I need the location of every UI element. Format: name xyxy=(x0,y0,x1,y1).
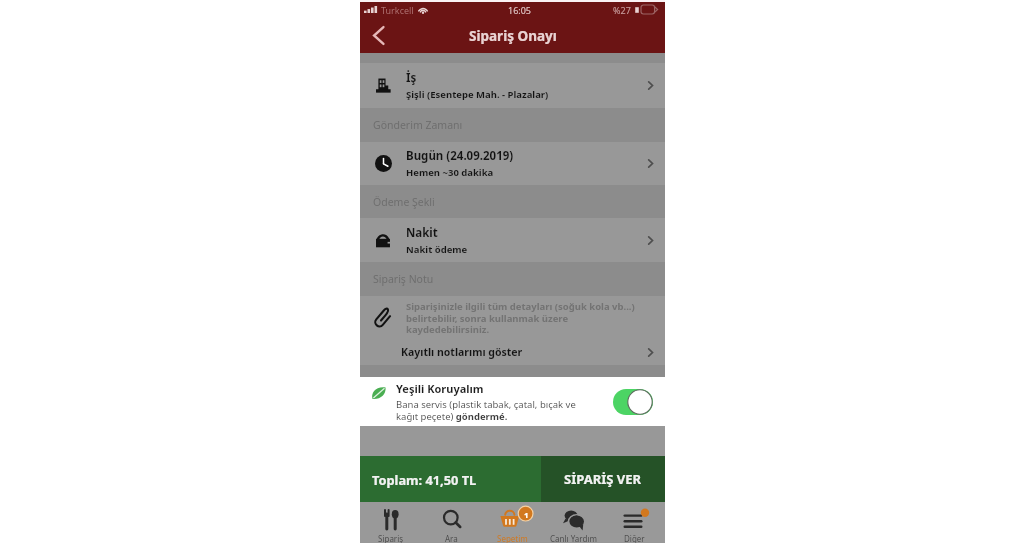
button[interactable]: Siparişinizle ilgili tüm detayları (soğu… xyxy=(360,296,665,339)
staticText: Hemen ~30 dakika xyxy=(406,166,494,179)
button[interactable]: Bugün (24.09.2019) xyxy=(360,142,665,185)
staticText: Nakit xyxy=(406,225,438,241)
staticText: Sepetim xyxy=(497,533,528,543)
staticText: Diğer xyxy=(624,533,645,543)
button[interactable]: 1 xyxy=(482,502,543,543)
staticText: Nakit ödeme xyxy=(406,243,468,256)
staticText: Canlı Yardım xyxy=(550,533,597,543)
staticText: Turkcell xyxy=(381,4,414,16)
staticText: Bugün (24.09.2019) xyxy=(406,148,514,164)
staticText: Sipariş xyxy=(378,533,404,543)
staticText: SİPARİŞ VER xyxy=(564,470,642,488)
staticText: İş xyxy=(406,70,417,86)
button[interactable]: Kayıtlı notlarımı göster xyxy=(360,339,665,365)
button[interactable]: Yeşili Koruyalım xyxy=(360,377,665,426)
button[interactable]: Toplam: 41,50 TL xyxy=(360,456,541,502)
staticText: Ara xyxy=(445,533,458,543)
button[interactable]: Yeşili Koruyalım toggle xyxy=(613,389,653,415)
staticText: %27 xyxy=(613,4,631,16)
button[interactable]: Canlı Yardım xyxy=(543,502,604,543)
staticText: Sipariş Onayı xyxy=(469,27,557,45)
button[interactable]: Diğer xyxy=(604,502,665,543)
staticText: 16:05 xyxy=(508,4,532,16)
staticText: 1 xyxy=(524,510,529,518)
button[interactable]: İş xyxy=(360,63,665,108)
staticText: Toplam: 41,50 TL xyxy=(372,471,477,488)
staticText: Gönderim Zamanı xyxy=(373,118,463,132)
button[interactable]: Sipariş xyxy=(360,502,421,543)
button[interactable]: SİPARİŞ VER xyxy=(541,456,665,502)
staticText: Şişli (Esentepe Mah. - Plazalar) xyxy=(406,88,549,101)
button[interactable]: Ara xyxy=(421,502,482,543)
staticText: Sipariş Notu xyxy=(373,272,434,286)
staticText: Bana servis (plastik tabak, çatal, bıçak… xyxy=(396,398,593,423)
staticText: Yeşili Koruyalım xyxy=(396,381,484,396)
button[interactable]: Nakit xyxy=(360,218,665,262)
staticText: Kayıtlı notlarımı göster xyxy=(401,345,523,359)
staticText: Ödeme Şekli xyxy=(373,195,435,209)
staticText: Siparişinizle ilgili tüm detayları (soğu… xyxy=(406,300,651,335)
button[interactable]: Back xyxy=(360,18,396,53)
